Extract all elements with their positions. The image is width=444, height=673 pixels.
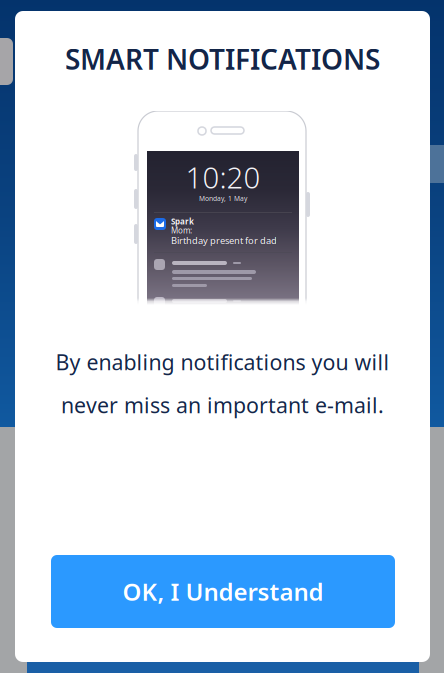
staticText: Birthday present for dad	[171, 234, 277, 247]
staticText: 10:20	[185, 157, 260, 196]
staticText: Monday, 1 May	[199, 194, 247, 203]
staticText: SMART NOTIFICATIONS	[65, 40, 380, 78]
staticText: By enabling notifications you will	[55, 348, 389, 376]
staticText: Spark	[171, 216, 194, 227]
button[interactable]: OK, I Understand	[51, 555, 395, 628]
staticText: never miss an important e-mail.	[61, 391, 384, 419]
staticText: OK, I Understand	[122, 576, 323, 607]
staticText: Mom:	[171, 225, 192, 236]
